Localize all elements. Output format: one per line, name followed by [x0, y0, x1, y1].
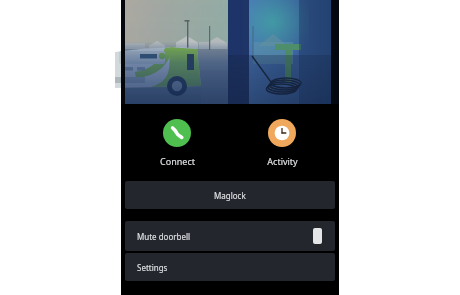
staticText: Mute doorbell	[137, 231, 191, 242]
staticText: Activity	[267, 155, 298, 167]
staticText: Maglock	[214, 190, 246, 201]
staticText: Connect	[160, 155, 195, 167]
button[interactable]: Connect	[142, 119, 212, 167]
button[interactable]: Mute doorbell	[125, 221, 335, 251]
button[interactable]: Settings	[125, 253, 335, 281]
staticText: Settings	[137, 262, 168, 273]
button[interactable]: Activity	[247, 119, 317, 167]
button[interactable]: Maglock	[125, 181, 335, 209]
